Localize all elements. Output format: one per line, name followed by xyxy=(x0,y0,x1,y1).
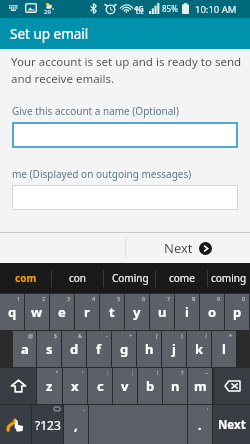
button[interactable]: x xyxy=(63,368,87,404)
button[interactable]: come xyxy=(156,263,208,293)
button[interactable]: y xyxy=(125,294,149,330)
button[interactable]: ?123 xyxy=(32,405,63,444)
staticText: $ xyxy=(54,332,58,339)
staticText: ; xyxy=(132,369,134,376)
staticText: d xyxy=(70,340,79,358)
staticText: c xyxy=(97,377,104,395)
staticText: l xyxy=(222,340,226,358)
button[interactable]: Next xyxy=(126,233,250,263)
button[interactable]: p xyxy=(225,294,249,330)
button[interactable]: h xyxy=(137,331,161,367)
staticText: 2 xyxy=(42,295,46,302)
staticText: 29 xyxy=(44,8,51,16)
button[interactable]: , xyxy=(64,405,88,444)
staticText: 9 xyxy=(217,295,221,302)
button[interactable]: con xyxy=(52,263,104,293)
staticText: + xyxy=(129,332,133,339)
button[interactable]: v xyxy=(113,368,137,404)
staticText: 6 xyxy=(142,295,146,302)
button[interactable]: Swipe input xyxy=(0,405,31,444)
button[interactable]: f xyxy=(87,331,111,367)
staticText: / xyxy=(205,332,208,339)
button[interactable]: k xyxy=(187,331,211,367)
staticText: n xyxy=(171,377,180,395)
button[interactable]: u xyxy=(150,294,174,330)
button[interactable]: Set up email xyxy=(0,18,250,49)
button[interactable]: m xyxy=(188,368,212,404)
staticText: ' xyxy=(207,406,209,413)
button[interactable]: s xyxy=(37,331,61,367)
button[interactable]: Next xyxy=(213,405,250,444)
button[interactable]: z xyxy=(37,368,62,404)
button[interactable]: b xyxy=(138,368,162,404)
staticText: com xyxy=(15,271,37,285)
staticText: w xyxy=(31,303,43,321)
staticText: me (Displayed on outgoing messages) xyxy=(12,167,192,181)
button[interactable]: i xyxy=(175,294,199,330)
staticText: 7 xyxy=(167,295,171,302)
staticText: e xyxy=(58,303,66,321)
button[interactable] xyxy=(12,185,238,210)
staticText: ' xyxy=(82,369,84,376)
staticText: h xyxy=(145,340,154,358)
button[interactable]: c xyxy=(88,368,112,404)
button[interactable]: Backspace xyxy=(214,368,250,404)
staticText: - xyxy=(83,406,85,413)
button[interactable]: d xyxy=(62,331,86,367)
button[interactable]: w xyxy=(25,294,49,330)
button[interactable]: g xyxy=(112,331,136,367)
staticText: Set up email xyxy=(10,25,89,43)
button[interactable]: n xyxy=(163,368,187,404)
button[interactable]: Shift xyxy=(0,368,36,404)
staticText: * xyxy=(229,332,233,339)
staticText: 1 xyxy=(17,295,21,302)
staticText: ( xyxy=(156,332,158,339)
staticText: q xyxy=(8,303,17,321)
staticText: LTE xyxy=(136,9,144,15)
staticText: z xyxy=(46,377,53,395)
button[interactable]: e xyxy=(50,294,74,330)
staticText: Coming xyxy=(112,271,149,285)
staticText: Give this account a name (Optional) xyxy=(12,104,179,118)
button[interactable]: com xyxy=(0,263,52,293)
button[interactable]: j xyxy=(162,331,186,367)
button[interactable]: Coming xyxy=(104,263,156,293)
staticText: 3 xyxy=(67,295,71,302)
staticText: t xyxy=(109,303,115,321)
staticText: come xyxy=(169,271,195,285)
staticText: 5 xyxy=(117,295,121,302)
button[interactable]: q xyxy=(0,294,24,330)
staticText: Your account is set up and is ready to s… xyxy=(11,54,242,86)
staticText: x xyxy=(71,377,79,395)
staticText: 4 xyxy=(92,295,96,302)
staticText: ~ xyxy=(205,369,209,376)
staticText: s xyxy=(46,340,53,358)
button[interactable]: a xyxy=(13,331,36,367)
staticText: coming xyxy=(211,271,247,285)
button[interactable]: o xyxy=(200,294,224,330)
staticText: & xyxy=(78,332,83,339)
staticText: " xyxy=(56,369,59,376)
staticText: 4G xyxy=(134,3,144,13)
staticText: m xyxy=(194,377,207,395)
button[interactable]: . xyxy=(188,405,212,444)
staticText: , xyxy=(74,416,78,434)
staticText: @ xyxy=(28,332,33,339)
staticText: - xyxy=(106,332,108,339)
button[interactable] xyxy=(12,122,238,148)
staticText: con xyxy=(69,271,87,285)
staticText: g xyxy=(120,340,129,358)
staticText: f xyxy=(96,340,102,358)
staticText: p xyxy=(233,303,242,321)
staticText: i xyxy=(185,303,189,321)
staticText: 10:10 AM xyxy=(195,3,237,16)
button[interactable]: coming xyxy=(208,263,250,293)
staticText: . xyxy=(198,416,202,434)
button[interactable]: t xyxy=(100,294,124,330)
staticText: 8 xyxy=(192,295,196,302)
staticText: r xyxy=(84,303,90,321)
button[interactable]: r xyxy=(75,294,99,330)
button[interactable]: l xyxy=(212,331,236,367)
staticText: Next xyxy=(164,239,193,257)
